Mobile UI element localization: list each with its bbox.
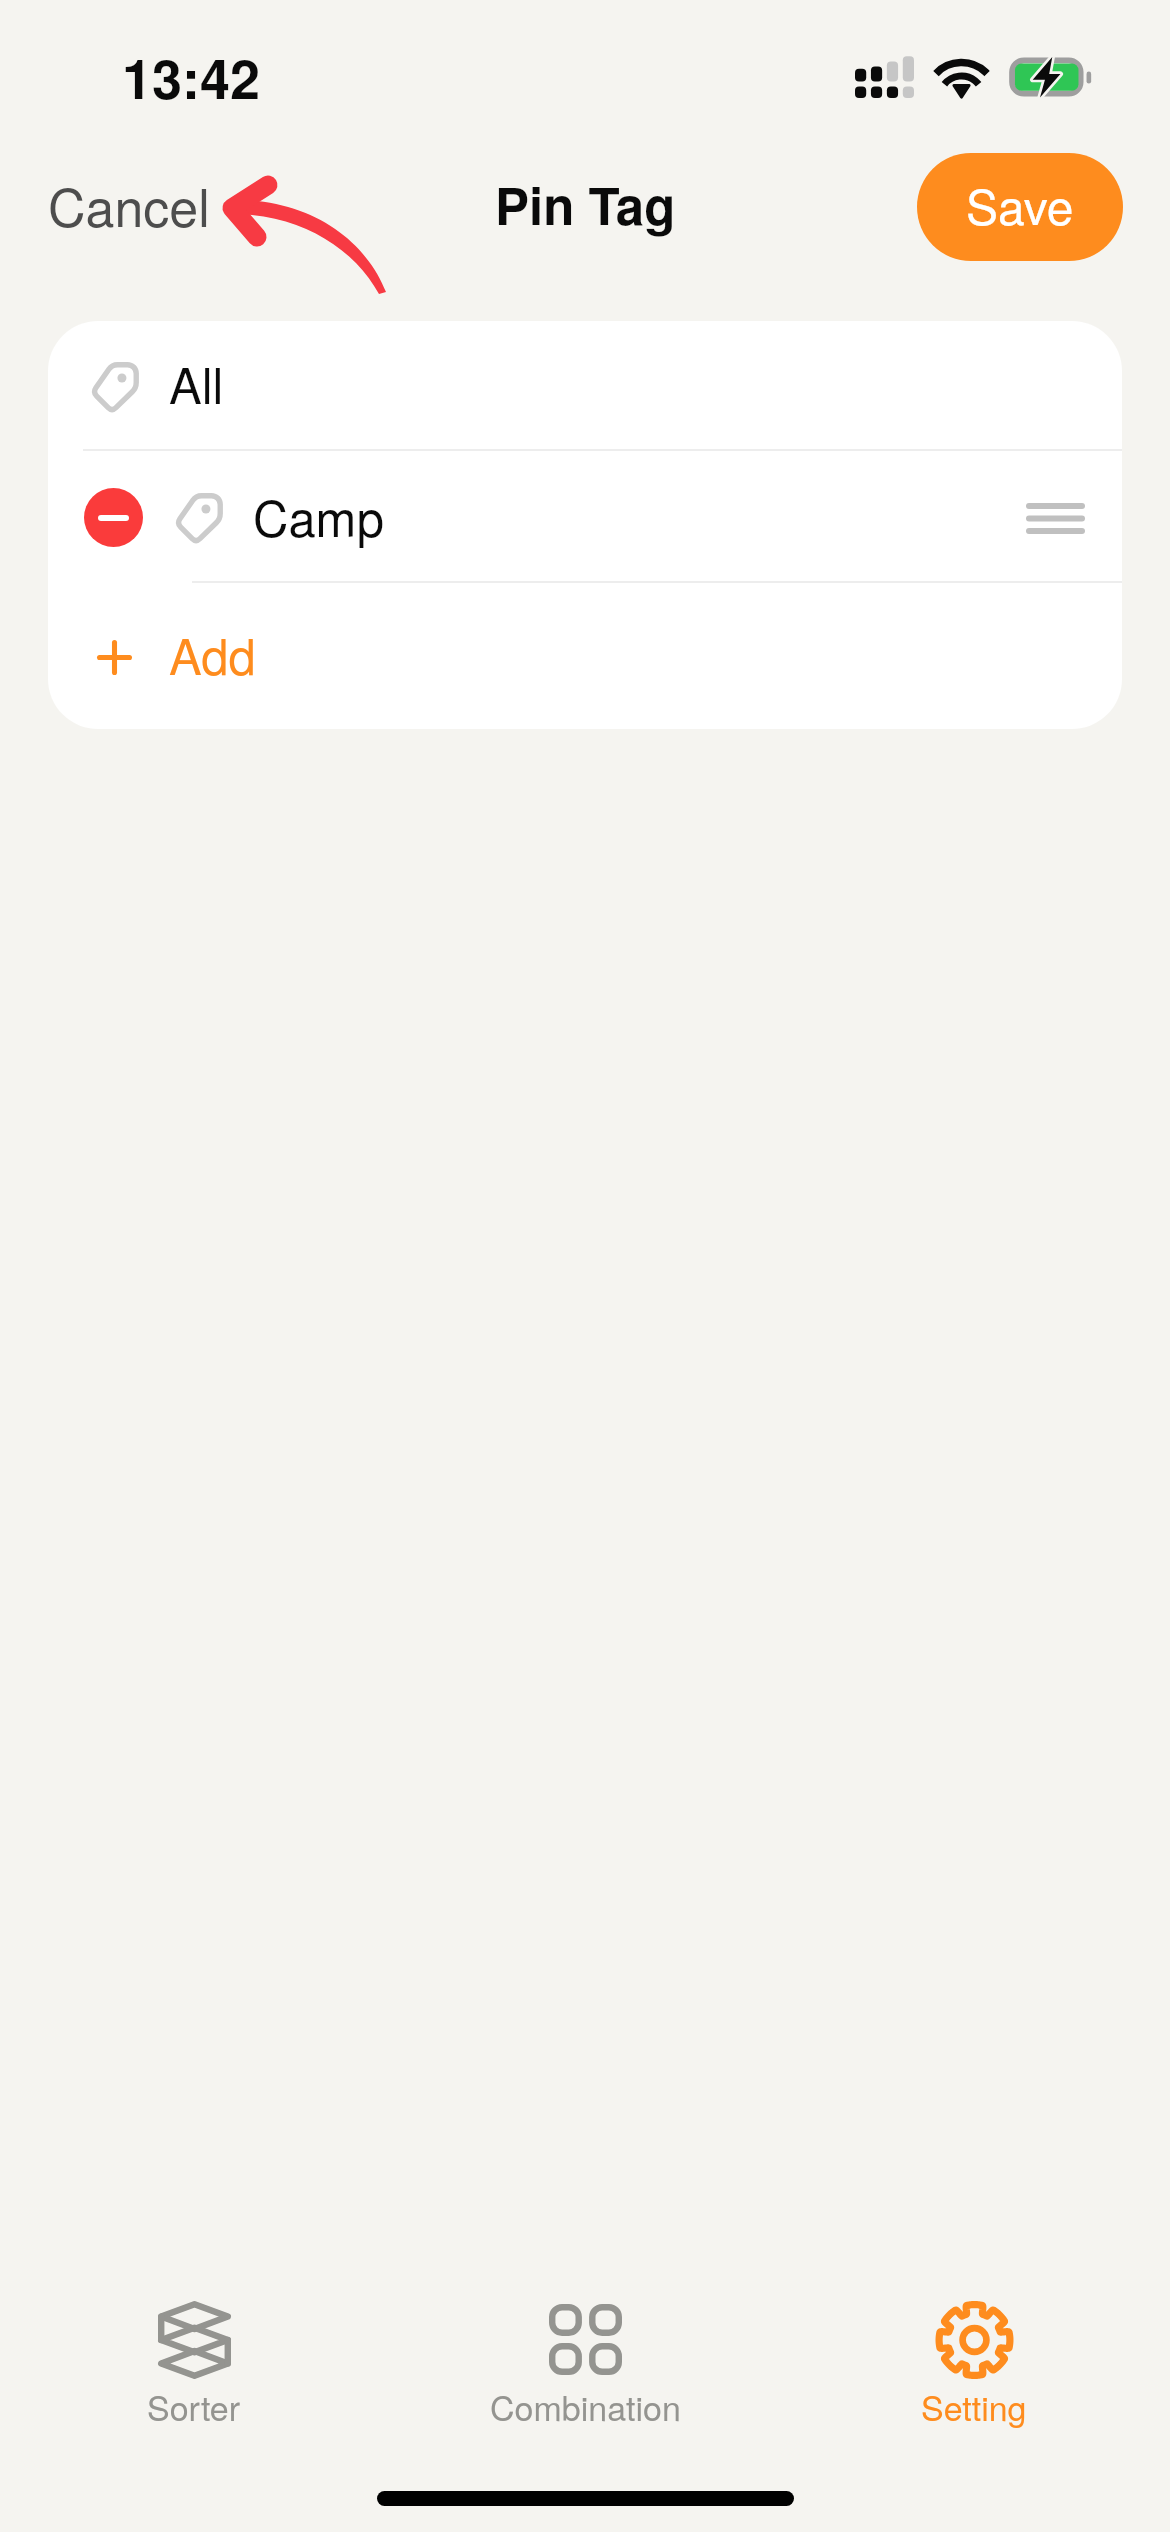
button[interactable]: Reorder Camp tag (999, 478, 1111, 558)
button[interactable] (74, 2275, 314, 2430)
button[interactable]: Save (917, 153, 1123, 261)
staticText: Setting (921, 2382, 1027, 2431)
button[interactable] (465, 2278, 705, 2433)
staticText: Pin Tag (495, 168, 676, 241)
button[interactable]: Remove Camp tag (48, 451, 1122, 583)
button[interactable]: Cancel (17, 155, 241, 253)
button[interactable]: Add (48, 583, 1122, 729)
staticText: Camp (253, 481, 384, 551)
staticText: Sorter (147, 2382, 241, 2431)
button[interactable] (854, 2275, 1094, 2430)
staticText: 13:42 (122, 38, 261, 115)
button[interactable]: Remove Camp tag (84, 488, 143, 547)
staticText: Save (966, 170, 1074, 239)
staticText: Cancel (48, 167, 210, 241)
staticText: Combination (490, 2382, 681, 2431)
button[interactable]: All (48, 321, 1122, 451)
staticText: All (169, 348, 224, 418)
staticText: Add (169, 619, 256, 689)
